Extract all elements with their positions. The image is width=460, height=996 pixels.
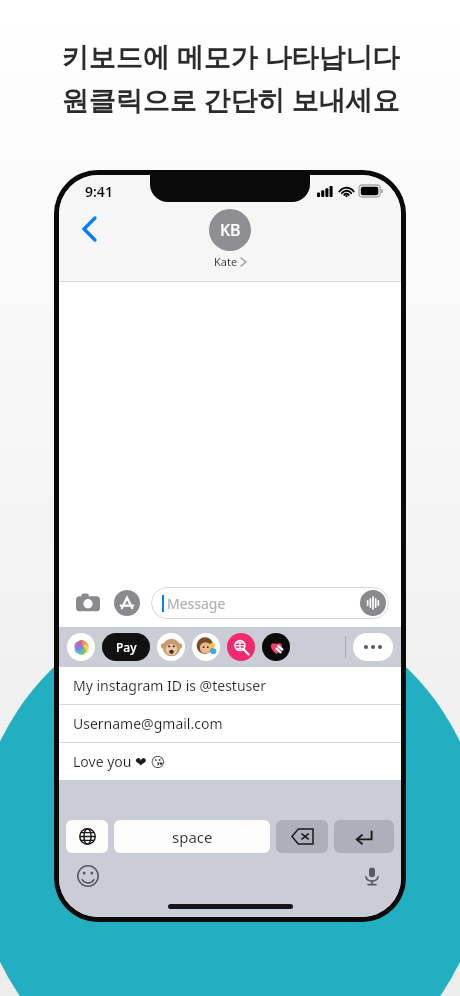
button[interactable]: Back	[69, 209, 109, 249]
button[interactable]: App	[262, 633, 290, 661]
staticText: Username@gmail.com	[73, 714, 223, 733]
button[interactable]: Love you ❤️ 😘	[59, 743, 401, 780]
button[interactable]: space	[114, 820, 270, 853]
staticText: Love you ❤️ 😘	[73, 752, 166, 771]
button[interactable]: App	[67, 633, 95, 661]
staticText: 9:41	[85, 182, 113, 201]
button[interactable]: App	[157, 633, 185, 661]
button[interactable]: Emoji	[75, 863, 101, 889]
button[interactable]: App Store	[110, 586, 143, 619]
button[interactable]: Username@gmail.com	[59, 705, 401, 742]
button[interactable]: App	[227, 633, 255, 661]
button[interactable]: Backspace	[276, 820, 328, 853]
button[interactable]: KB	[209, 209, 251, 269]
button[interactable]: Dictate	[359, 863, 385, 889]
staticText: My instagram ID is @testuser	[73, 676, 266, 695]
staticText: 키보드에 메모가 나타납니다	[61, 38, 400, 75]
button[interactable]: My instagram ID is @testuser	[59, 667, 401, 704]
button[interactable]: Camera	[71, 586, 104, 619]
button[interactable]: Change keyboard	[66, 820, 108, 853]
button[interactable]: More apps	[353, 633, 393, 661]
button[interactable]: Pay	[102, 633, 150, 661]
staticText: Message	[167, 594, 226, 613]
button[interactable]: App	[192, 633, 220, 661]
button[interactable]: Audio message	[360, 590, 386, 616]
staticText: KB	[220, 219, 241, 241]
staticText: space	[172, 827, 213, 847]
staticText: Kate	[214, 254, 238, 269]
button[interactable]: Return	[334, 820, 394, 853]
staticText: 원클릭으로 간단히 보내세요	[61, 81, 400, 118]
staticText: Pay	[116, 639, 137, 655]
button[interactable]: Message	[151, 587, 389, 619]
